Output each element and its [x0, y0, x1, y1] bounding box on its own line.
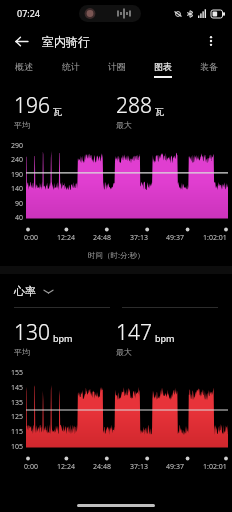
button[interactable]: Back — [10, 30, 32, 52]
staticText: 概述 — [15, 61, 33, 72]
button[interactable]: 计圈 — [94, 56, 140, 82]
staticText: 24:48 — [93, 462, 111, 472]
staticText: 07:24 — [17, 7, 41, 19]
staticText: 147 — [116, 318, 152, 347]
staticText: 计圈 — [108, 61, 126, 72]
staticText: 统计 — [62, 61, 80, 72]
staticText: 1:02:01 — [203, 462, 227, 472]
staticText: 37:13 — [130, 462, 148, 472]
staticText: 130 — [14, 318, 50, 347]
button[interactable]: 概述 — [0, 56, 47, 82]
staticText: 145 — [10, 383, 23, 393]
staticText: 190 — [10, 170, 23, 180]
staticText: 37:13 — [130, 233, 148, 243]
button[interactable]: 统计 — [47, 56, 94, 82]
staticText: 最大 — [116, 120, 132, 130]
staticText: 瓦 — [155, 106, 164, 117]
staticText: 平均 — [14, 347, 30, 357]
staticText: 90 — [14, 199, 23, 209]
staticText: 0:00 — [24, 233, 38, 243]
staticText: 瓦 — [53, 106, 62, 117]
staticText: 图表 — [154, 61, 172, 72]
staticText: 1:02:01 — [203, 233, 227, 243]
button[interactable]: 图表 — [140, 56, 186, 82]
staticText: bpm — [155, 332, 175, 344]
staticText: 290 — [10, 141, 23, 151]
staticText: 12:24 — [57, 233, 75, 243]
staticText: 135 — [10, 398, 23, 408]
staticText: 12:24 — [57, 462, 75, 472]
staticText: 0:00 — [24, 462, 38, 472]
staticText: 288 — [116, 91, 152, 120]
staticText: 240 — [10, 155, 23, 165]
staticText: 125 — [10, 412, 23, 422]
staticText: 时间（时:分:秒） — [88, 250, 145, 260]
staticText: 平均 — [14, 120, 30, 130]
staticText: 心率 — [14, 284, 36, 298]
staticText: bpm — [53, 332, 73, 344]
button[interactable]: 装备 — [186, 56, 232, 82]
button[interactable]: More options — [200, 30, 222, 52]
staticText: 115 — [10, 427, 23, 437]
staticText: 49:37 — [166, 233, 184, 243]
staticText: 24:48 — [93, 233, 111, 243]
staticText: 196 — [14, 91, 50, 120]
staticText: 49:37 — [166, 462, 184, 472]
staticText: 155 — [10, 368, 23, 378]
staticText: 140 — [10, 184, 23, 194]
staticText: 105 — [10, 442, 23, 452]
staticText: 室内骑行 — [42, 34, 90, 49]
staticText: 装备 — [200, 61, 218, 72]
staticText: 最大 — [116, 347, 132, 357]
button[interactable]: 心率 — [14, 284, 218, 298]
staticText: 40 — [14, 213, 23, 223]
